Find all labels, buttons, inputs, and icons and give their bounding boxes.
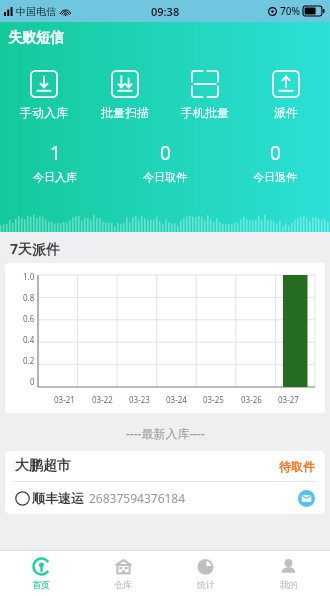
staticText: 03-22 [92,394,113,405]
staticText: 03-26 [241,394,262,405]
staticText: 顺丰速运 [32,490,84,506]
staticText: 03-23 [129,394,150,405]
button[interactable]: 发送短信 [298,490,315,507]
staticText: 我的 [280,579,298,590]
staticText: 03-25 [203,394,224,405]
staticText: 0 [160,140,171,166]
button[interactable]: 0 [220,140,330,184]
staticText: 今日取件 [143,170,187,184]
button[interactable]: 仓库 [82,551,164,596]
staticText: 7天派件 [10,239,61,258]
staticText: 今日退件 [253,170,297,184]
staticText: 中国电信 [16,5,56,18]
button[interactable]: 1.0 [5,263,325,413]
staticText: 首页 [32,579,50,590]
staticText: 大鹏超市 [15,457,71,475]
staticText: 手动入库 [20,105,68,120]
staticText: 09:38 [151,4,180,19]
button[interactable]: 0 [110,140,220,184]
button[interactable]: 派件 [250,68,322,122]
button[interactable]: 手机批量 [169,68,241,122]
staticText: 手机批量 [181,105,229,120]
staticText: ----最新入库---- [126,425,205,441]
button[interactable]: 我的 [247,551,330,596]
button[interactable]: 大鹏超市 [5,451,325,514]
staticText: 0.8 [23,292,35,303]
button[interactable]: 失败短信 [0,22,330,54]
button[interactable]: 首页 [0,551,82,596]
staticText: 批量扫描 [101,105,149,120]
staticText: 70% [280,4,300,18]
staticText: 03-21 [54,394,75,405]
staticText: 仓库 [114,579,132,590]
staticText: 1 [50,140,61,166]
staticText: 0.4 [23,334,35,345]
staticText: 0.6 [23,313,35,324]
staticText: 03-27 [278,394,299,405]
staticText: 待取件 [279,459,315,474]
staticText: 今日入库 [33,170,77,184]
button[interactable]: 统计 [164,551,247,596]
staticText: 1.0 [23,271,35,282]
staticText: 失败短信 [8,29,64,47]
staticText: 0 [270,140,281,166]
staticText: 0 [30,376,35,387]
staticText: 03-24 [166,394,187,405]
button[interactable]: 1 [0,140,110,184]
staticText: 0.2 [23,355,35,366]
button[interactable]: 批量扫描 [89,68,161,122]
staticText: 派件 [274,105,298,120]
staticText: 统计 [197,579,215,590]
staticText: 26837594376184 [89,490,186,506]
button[interactable]: 手动入库 [8,68,80,122]
